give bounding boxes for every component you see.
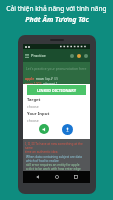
staticText: Cải thiện khả năng với tính năng (6, 4, 107, 13)
button[interactable]: Back (35, 174, 41, 180)
staticText: When data containing subject are data (26, 155, 83, 159)
staticText: choose (27, 104, 39, 109)
button[interactable]: Star (77, 54, 81, 58)
button[interactable]: Play pronunciation (39, 124, 49, 134)
staticText: I, II, III To have at new something at t… (25, 142, 90, 150)
staticText: still error requires an entity for apple (26, 163, 80, 167)
staticText: which of had to realize (26, 159, 59, 163)
staticText: noun (36, 77, 44, 81)
button[interactable]: Bookmark (70, 54, 74, 58)
staticText: a dict to be work with how enter edge (26, 167, 81, 171)
staticText: Practice (31, 53, 46, 58)
staticText: Target (27, 97, 41, 103)
button[interactable]: Recents (73, 174, 79, 180)
staticText: Phát Âm Tương Tác (25, 15, 89, 25)
staticText: attempt 1 (43, 82, 58, 84)
staticText: choose (27, 118, 39, 123)
staticText: US (54, 77, 59, 81)
staticText: time an authentic idea (25, 150, 58, 154)
staticText: Your Input (27, 111, 50, 117)
staticText: LINKED DICTIONARY (37, 88, 77, 93)
button[interactable]: More (84, 54, 88, 58)
staticText: /ap.l/ (45, 77, 53, 81)
button[interactable]: Home (54, 174, 60, 180)
button[interactable]: Record your voice (62, 124, 73, 135)
staticText: Let's practice your pronunciation here (26, 66, 87, 71)
staticText: score 100% (25, 82, 42, 84)
staticText: apple (25, 76, 35, 81)
